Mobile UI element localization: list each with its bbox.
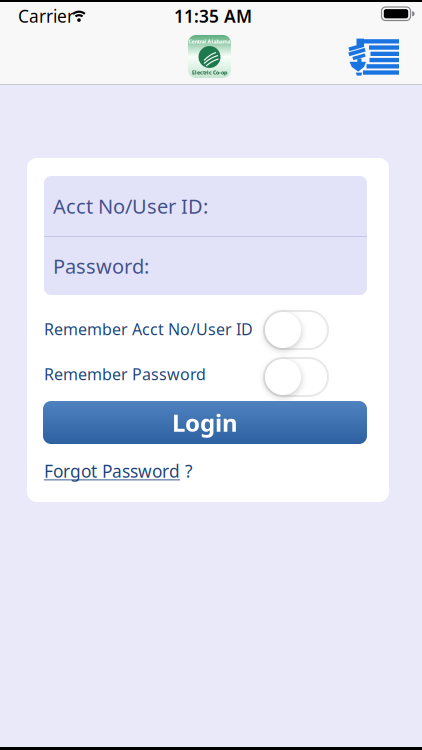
button[interactable]: Password (53, 237, 367, 295)
staticText: Carrier (18, 4, 74, 27)
button[interactable]: Acct No/User ID (53, 177, 367, 235)
staticText: 11:35 AM (174, 4, 252, 27)
staticText: ? (180, 459, 193, 482)
button[interactable]: Co-op Connect (345, 34, 400, 78)
button[interactable]: Login (43, 401, 367, 444)
staticText: Acct No/User ID: (53, 193, 208, 219)
button[interactable]: Remember Password (264, 358, 328, 396)
staticText: Remember Acct No/User ID (44, 318, 253, 340)
staticText: Remember Password (44, 363, 206, 385)
staticText: Login (172, 407, 238, 438)
staticText: Forgot Password (44, 459, 180, 482)
button[interactable]: Forgot Password (44, 458, 214, 484)
staticText: Central Alabama (188, 38, 230, 45)
button[interactable]: Remember Acct No/User ID (264, 311, 328, 349)
staticText: Password: (53, 253, 149, 279)
staticText: Electric Co-op (192, 69, 227, 76)
